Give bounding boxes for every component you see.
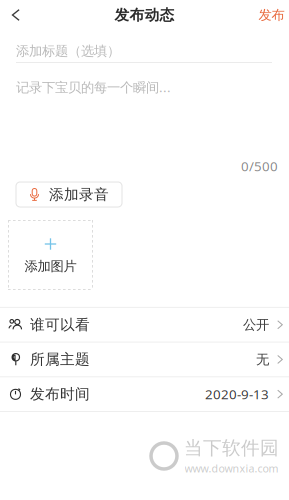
button[interactable]: Back: [0, 0, 32, 30]
staticText: 发布时间: [30, 385, 90, 403]
staticText: 记录下宝贝的每一个瞬间...: [16, 78, 171, 96]
button[interactable]: 谁可以看: [0, 308, 289, 343]
staticText: 谁可以看: [30, 316, 90, 334]
staticText: 无: [256, 351, 269, 368]
staticText: www.downxia.com: [184, 461, 278, 476]
staticText: 发布: [258, 7, 284, 23]
staticText: 公开: [243, 317, 269, 333]
staticText: 添加标题（选填）: [16, 43, 120, 59]
button[interactable]: 发布时间: [0, 377, 289, 412]
staticText: 发布动态: [114, 6, 174, 24]
button[interactable]: 添加录音: [16, 182, 122, 207]
staticText: 2020-9-13: [205, 385, 269, 403]
button[interactable]: 发布: [254, 0, 289, 30]
staticText: 所属主题: [30, 350, 90, 368]
button[interactable]: 所属主题: [0, 343, 289, 377]
button[interactable]: 添加图片: [8, 220, 93, 290]
staticText: 当下软件园: [184, 436, 279, 459]
staticText: 0/500: [241, 157, 278, 175]
staticText: 添加图片: [24, 258, 76, 274]
staticText: 添加录音: [49, 185, 109, 203]
